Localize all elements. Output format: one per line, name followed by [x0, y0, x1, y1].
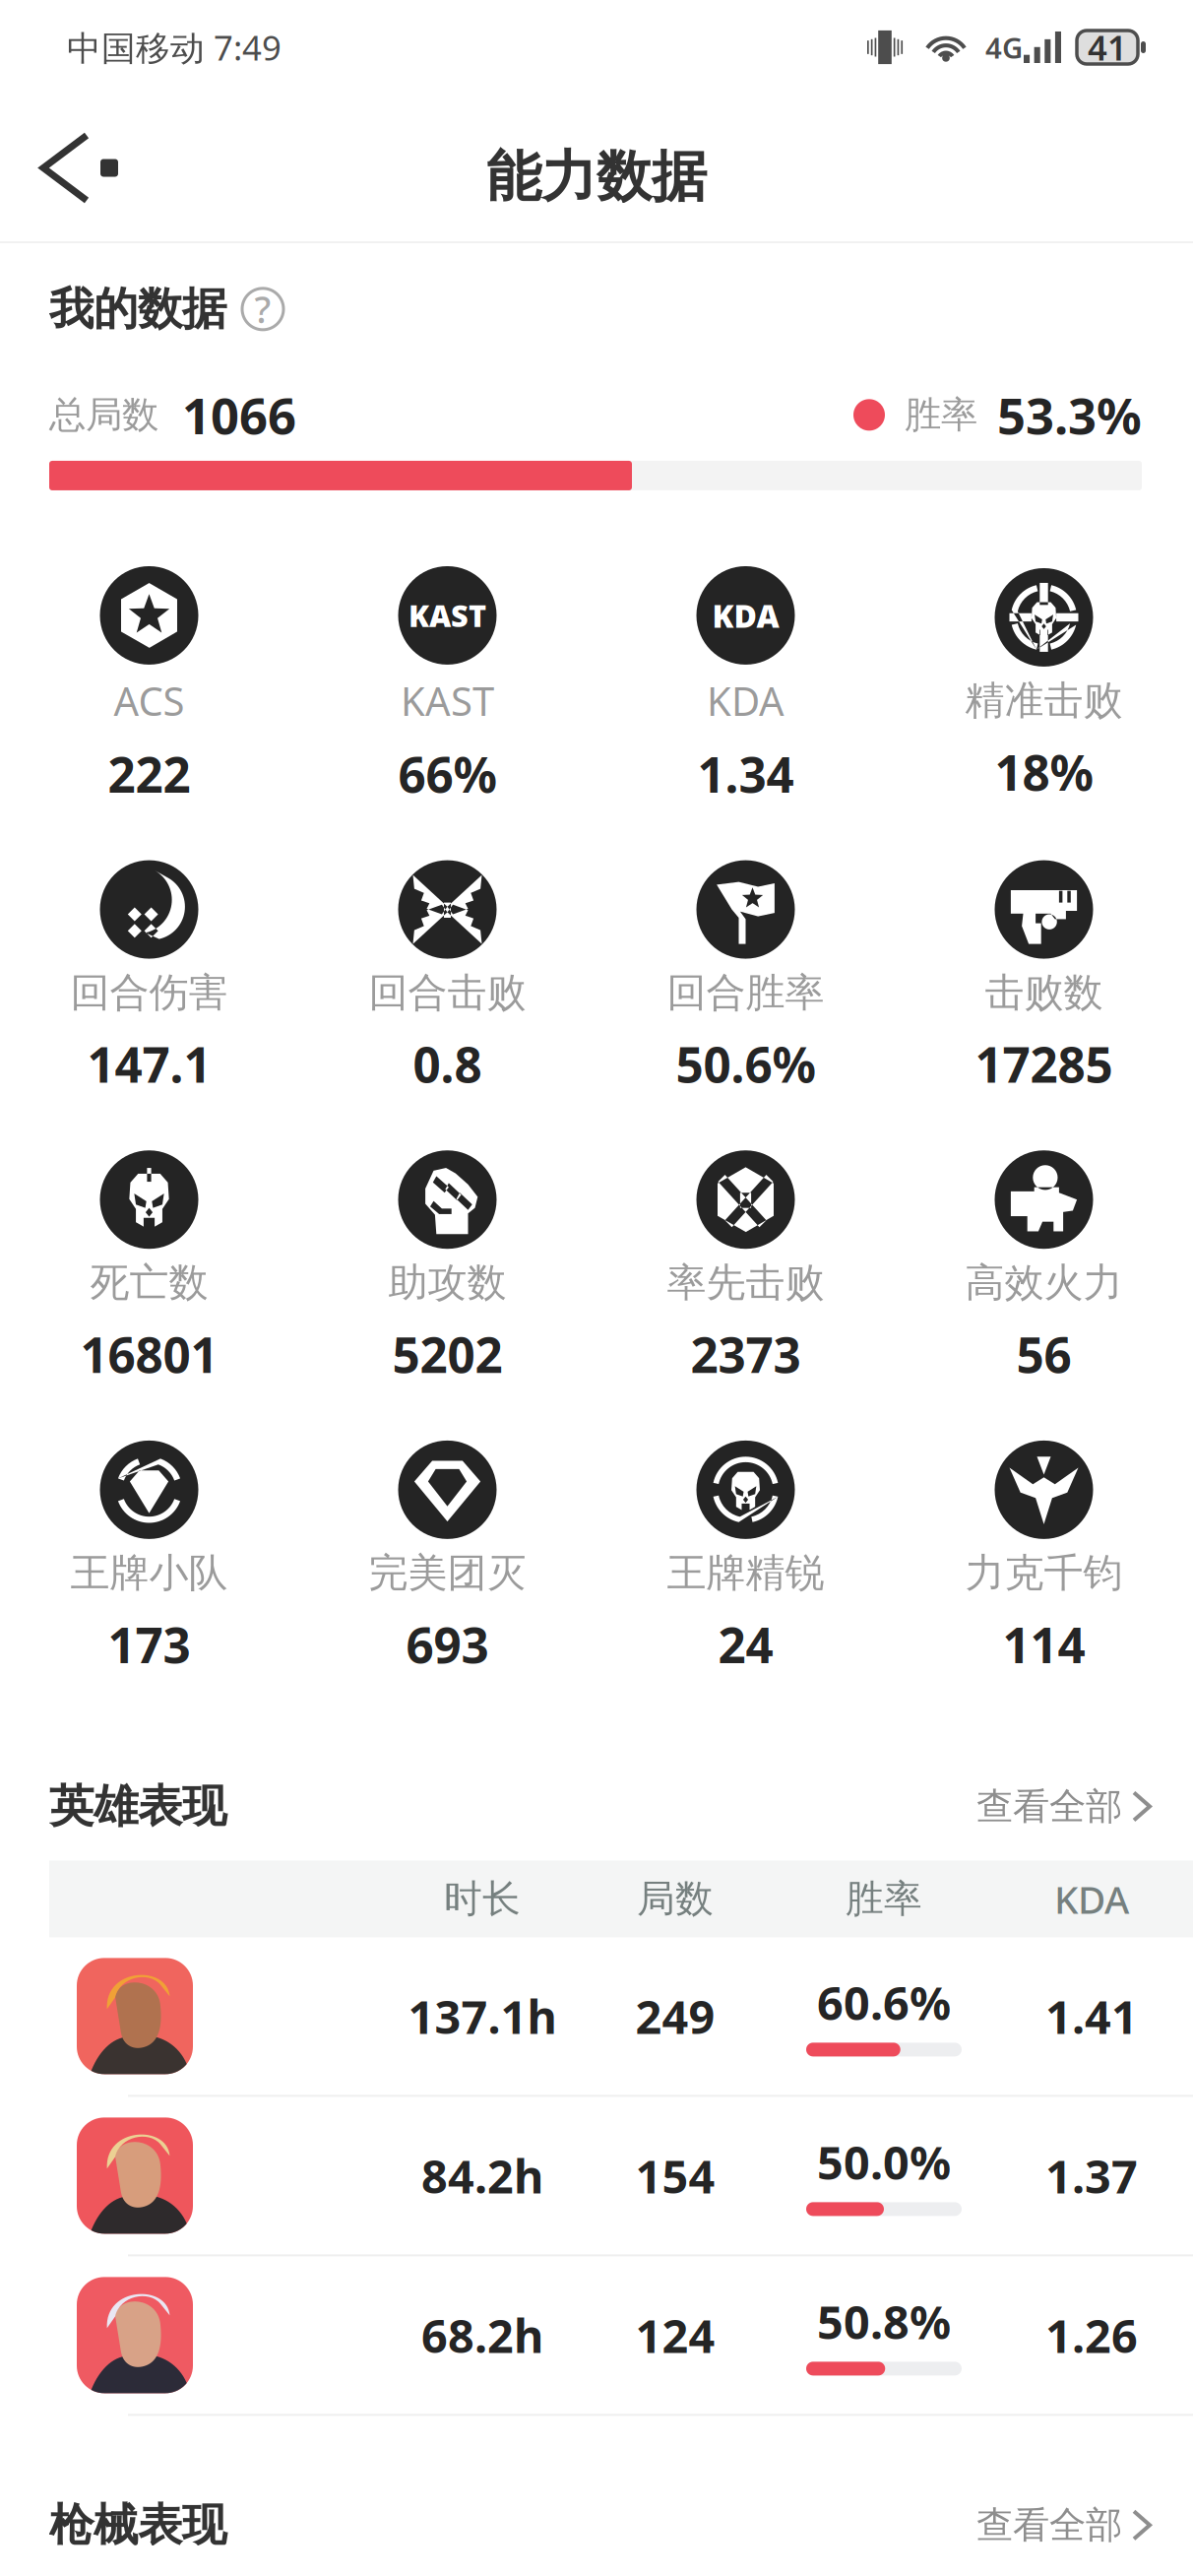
- button[interactable]: 查看全部: [976, 1778, 1150, 1835]
- staticText: 249: [635, 1986, 715, 2047]
- staticText: KDA: [712, 594, 779, 636]
- staticText: KDA: [707, 675, 785, 727]
- staticText: 中国移动 7:49: [67, 25, 282, 70]
- staticText: 0.8: [413, 1032, 482, 1096]
- staticText: 王牌精锐: [667, 1549, 824, 1597]
- staticText: 1.26: [1045, 2305, 1138, 2366]
- staticText: 124: [635, 2305, 715, 2366]
- staticText: 回合击败: [369, 969, 526, 1017]
- staticText: 60.6%: [817, 1972, 951, 2033]
- staticText: 时长: [444, 1875, 521, 1922]
- staticText: 154: [635, 2145, 715, 2206]
- staticText: 18%: [995, 740, 1093, 804]
- staticText: 693: [406, 1612, 489, 1676]
- staticText: 17285: [975, 1032, 1113, 1096]
- staticText: 死亡数: [90, 1259, 208, 1307]
- staticText: 查看全部: [976, 2503, 1122, 2548]
- staticText: 4G: [985, 28, 1023, 66]
- staticText: 率先击败: [667, 1259, 824, 1307]
- staticText: 114: [1003, 1612, 1085, 1676]
- staticText: 胜率: [846, 1875, 922, 1922]
- staticText: 2373: [691, 1322, 801, 1386]
- staticText: KAST: [408, 595, 486, 635]
- staticText: 我的数据: [49, 282, 226, 336]
- staticText: KDA: [1054, 1874, 1129, 1924]
- staticText: 回合伤害: [70, 969, 228, 1017]
- button[interactable]: 查看全部: [976, 2497, 1150, 2554]
- staticText: 1.37: [1045, 2145, 1138, 2206]
- staticText: 24: [718, 1612, 773, 1676]
- staticText: 147.1: [87, 1032, 211, 1096]
- staticText: 50.8%: [817, 2291, 951, 2352]
- staticText: 137.1h: [408, 1986, 557, 2047]
- button[interactable]: 137.1h: [0, 1937, 1193, 2095]
- staticText: 56: [1016, 1322, 1071, 1386]
- staticText: KAST: [401, 675, 494, 727]
- staticText: 精准击败: [965, 676, 1123, 725]
- staticText: 173: [108, 1612, 190, 1676]
- staticText: 1066: [182, 382, 296, 448]
- staticText: 查看全部: [976, 1784, 1122, 1829]
- staticText: 41: [1088, 25, 1127, 70]
- staticText: 击败数: [985, 969, 1103, 1017]
- staticText: 222: [108, 742, 190, 806]
- button[interactable]: 数据说明: [242, 288, 283, 330]
- staticText: ACS: [114, 675, 185, 727]
- button[interactable]: 返回: [37, 114, 156, 222]
- staticText: 局数: [637, 1875, 714, 1922]
- staticText: 高效火力: [965, 1259, 1123, 1307]
- staticText: 68.2h: [421, 2305, 543, 2366]
- staticText: 53.3%: [997, 382, 1142, 448]
- staticText: 胜率: [905, 392, 977, 438]
- staticText: 5202: [392, 1322, 502, 1386]
- staticText: 枪械表现: [49, 2498, 226, 2553]
- staticText: 1.34: [697, 742, 794, 806]
- staticText: 50.0%: [817, 2131, 951, 2192]
- staticText: 英雄表现: [49, 1779, 226, 1834]
- staticText: 助攻数: [388, 1259, 506, 1307]
- staticText: 50.6%: [676, 1032, 816, 1096]
- staticText: 完美团灭: [369, 1549, 526, 1597]
- staticText: 66%: [398, 742, 497, 806]
- staticText: 1.41: [1045, 1986, 1138, 2047]
- staticText: ?: [254, 285, 271, 334]
- button[interactable]: 68.2h: [0, 2256, 1193, 2414]
- staticText: 王牌小队: [70, 1549, 228, 1597]
- staticText: 能力数据: [486, 143, 707, 211]
- staticText: 回合胜率: [667, 969, 824, 1017]
- staticText: 力克千钧: [965, 1549, 1123, 1597]
- staticText: 84.2h: [421, 2145, 543, 2206]
- button[interactable]: 84.2h: [0, 2097, 1193, 2254]
- staticText: 总局数: [49, 392, 158, 438]
- staticText: 16801: [80, 1322, 218, 1386]
